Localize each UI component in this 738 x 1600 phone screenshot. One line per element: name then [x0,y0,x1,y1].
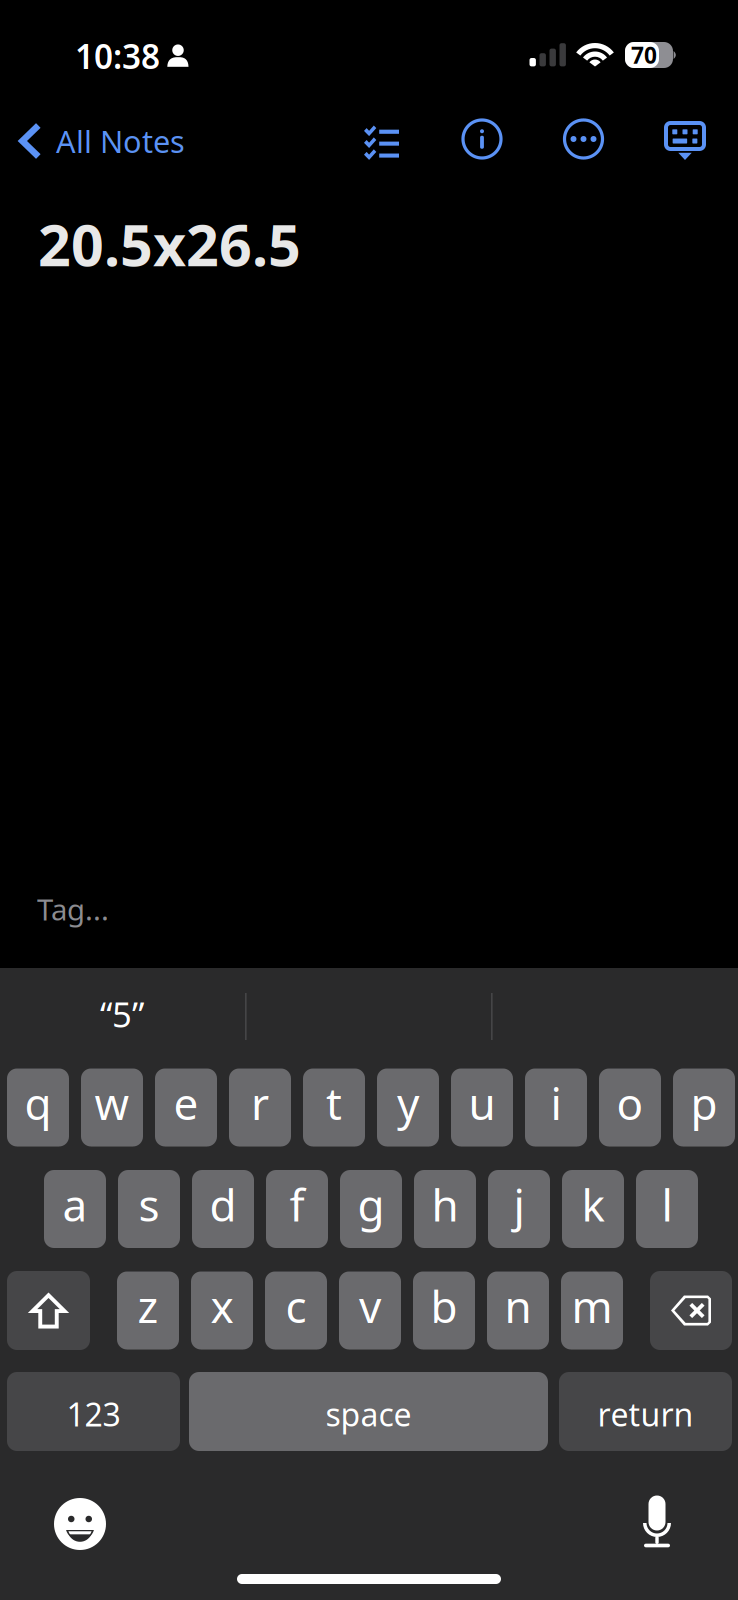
button[interactable]: k [562,1170,624,1248]
staticText: i [550,1074,561,1132]
button[interactable]: Dictate [639,1495,674,1549]
button[interactable]: o [599,1068,661,1146]
button[interactable]: Shift [7,1271,90,1350]
button[interactable]: space [189,1372,548,1451]
staticText: q [24,1074,51,1132]
staticText: space [325,1393,411,1435]
button[interactable]: c [265,1271,327,1349]
staticText: c [285,1277,306,1335]
staticText: l [661,1175,672,1234]
button[interactable]: q [7,1068,69,1146]
button[interactable]: 123 [7,1372,180,1451]
staticText: r [251,1074,269,1132]
staticText: u [468,1074,495,1132]
staticText: o [616,1074,643,1132]
button[interactable]: l [636,1170,698,1248]
button[interactable]: m [561,1271,623,1349]
staticText: y [397,1074,419,1132]
staticText: t [326,1074,342,1132]
button[interactable]: Emoji [54,1498,106,1550]
staticText: k [581,1175,604,1234]
button[interactable]: More [564,120,602,158]
staticText: All Notes [56,121,185,161]
button[interactable]: w [81,1068,143,1146]
staticText: x [210,1277,233,1335]
staticText: return [597,1393,693,1435]
button[interactable]: Note Info [463,120,501,158]
staticText: g [357,1175,384,1234]
staticText: 20.5x26.5 [38,206,301,282]
button[interactable]: a [44,1170,106,1248]
button[interactable]: n [487,1271,549,1349]
staticText: f [289,1175,304,1234]
button[interactable]: f [266,1170,328,1248]
button[interactable]: d [192,1170,254,1248]
button[interactable]: g [340,1170,402,1248]
staticText: “5” [100,991,144,1037]
staticText: z [137,1277,158,1335]
button[interactable]: All Notes [17,112,217,170]
staticText: m [571,1277,612,1335]
button[interactable]: Checklist [364,126,399,157]
staticText: a [62,1175,87,1234]
button[interactable]: h [414,1170,476,1248]
button[interactable]: i [525,1068,587,1146]
staticText: j [513,1175,524,1234]
button[interactable]: t [303,1068,365,1146]
staticText: h [431,1175,458,1234]
staticText: b [430,1277,457,1335]
staticText: 123 [66,1393,120,1435]
button[interactable]: j [488,1170,550,1248]
button[interactable]: y [377,1068,439,1146]
staticText: s [138,1175,159,1234]
button[interactable]: Delete [650,1271,732,1350]
staticText: 70 [631,40,657,70]
button[interactable]: x [191,1271,253,1349]
staticText: p [690,1074,717,1132]
button[interactable]: u [451,1068,513,1146]
staticText: 10:38 [75,34,160,78]
button[interactable]: v [339,1271,401,1349]
button[interactable]: b [413,1271,475,1349]
button[interactable]: r [229,1068,291,1146]
staticText: v [359,1277,381,1335]
button[interactable]: s [118,1170,180,1248]
staticText: Tag... [37,889,109,928]
button[interactable]: p [673,1068,735,1146]
staticText: n [504,1277,531,1335]
staticText: d [209,1175,236,1234]
button[interactable]: z [117,1271,179,1349]
staticText: e [173,1074,198,1132]
button[interactable]: Hide Keyboard [666,123,704,160]
button[interactable]: return [559,1372,732,1451]
button[interactable]: e [155,1068,217,1146]
staticText: w [94,1074,129,1132]
